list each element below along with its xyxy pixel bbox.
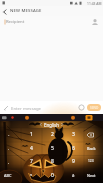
button[interactable] [3,105,9,111]
staticText: 2 [51,131,54,138]
button[interactable]: . [4,144,14,152]
staticText: NEW MESSAGE [10,8,42,14]
staticText: 0 [51,172,54,179]
button[interactable]: 0 [47,171,57,179]
staticText: 6 [72,145,75,152]
button[interactable] [78,104,85,111]
staticText: Enter message [11,105,41,111]
staticText: # [72,173,75,178]
button[interactable]: 6 [68,144,78,152]
button[interactable]: 2 [47,130,57,138]
staticText: 123 [88,159,94,163]
staticText: . [8,146,10,151]
staticText: 11:43 AM [87,1,102,5]
staticText: 3 [72,131,75,138]
button[interactable]: # [68,171,78,179]
button[interactable]: - [4,130,14,138]
staticText: 1 [30,131,33,138]
staticText: Back [87,146,96,151]
button[interactable]: English [44,122,59,128]
staticText: Next [87,173,96,178]
staticText: ABC [4,173,12,178]
staticText: * [30,173,33,178]
button[interactable]: 7 [26,157,36,165]
button[interactable]: 4 [26,144,36,152]
button[interactable]: 1 [26,130,36,138]
staticText: Recipient [6,19,25,25]
button[interactable]: * [26,171,36,179]
button[interactable]: SEND [87,104,101,111]
staticText: 4 [30,145,33,152]
staticText: 9 [72,158,75,165]
button[interactable]: ABC [1,171,15,179]
button[interactable]: 8 [47,157,57,165]
button[interactable]: Back [83,144,99,152]
button[interactable]: 123 [84,157,98,165]
button[interactable]: 5 [47,144,57,152]
button[interactable]: 9 [68,157,78,165]
button[interactable]: 3 [68,130,78,138]
staticText: 7 [30,158,33,165]
staticText: SEND [90,106,99,110]
button[interactable]: NEW MESSAGE [0,6,103,16]
button[interactable]: , [4,157,14,165]
button[interactable]: Next [83,171,99,179]
staticText: - [8,132,10,137]
button[interactable]: Recipient [0,16,103,27]
staticText: 8 [51,158,54,165]
staticText: , [8,159,10,164]
staticText: 5 [51,145,54,152]
